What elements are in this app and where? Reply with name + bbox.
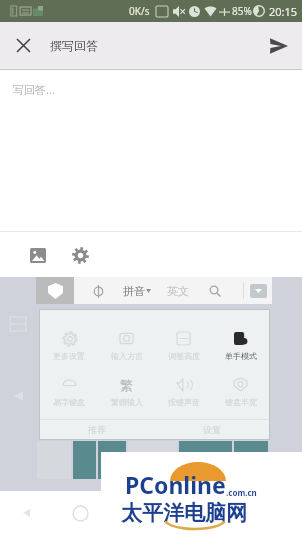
staticText: 写回答...: [13, 82, 55, 97]
button[interactable]: Send: [255, 22, 302, 69]
button[interactable]: Home: [66, 499, 94, 527]
button[interactable]: Key: [98, 441, 126, 479]
button[interactable]: 易字键盘: [40, 373, 98, 415]
staticText: 推荐: [88, 424, 106, 435]
staticText: 太平洋电脑网: [121, 500, 247, 526]
staticText: 20:15: [269, 4, 298, 19]
button[interactable]: 键盘半宽: [212, 373, 269, 415]
button[interactable]: Hide keyboard: [244, 277, 272, 304]
staticText: 键盘半宽: [225, 397, 257, 407]
staticText: 撰写回答: [50, 38, 98, 53]
staticText: 按键声音: [168, 397, 200, 407]
button[interactable]: 按键声音: [155, 373, 212, 415]
button[interactable]: Search: [205, 281, 225, 301]
button[interactable]: 英文: [167, 284, 189, 298]
staticText: 0K/s: [129, 4, 150, 18]
staticText: 易字键盘: [53, 397, 85, 407]
button[interactable]: Key: [128, 441, 177, 479]
staticText: 单手模式: [225, 351, 257, 361]
button[interactable]: 设置: [154, 420, 269, 439]
staticText: .com.cn: [226, 487, 257, 498]
staticText: 英文: [167, 284, 189, 298]
button[interactable]: 推荐: [40, 420, 154, 439]
button[interactable]: 繁: [98, 373, 155, 415]
button[interactable]: 输入方言: [98, 327, 155, 369]
staticText: 更多设置: [53, 351, 85, 361]
button[interactable]: 拼音: [123, 284, 151, 298]
button[interactable]: Voice input: [87, 280, 109, 302]
button[interactable]: Key: [234, 441, 268, 479]
button[interactable]: 更多设置: [40, 327, 98, 369]
staticText: 繁: [120, 377, 133, 393]
staticText: 拼音: [123, 284, 145, 298]
button[interactable]: Back: [12, 499, 40, 527]
staticText: PConline: [125, 469, 226, 500]
staticText: 调整高度: [168, 351, 200, 361]
button[interactable]: Key: [179, 441, 232, 479]
button[interactable]: Settings: [65, 240, 95, 270]
staticText: 繁體输入: [111, 397, 143, 407]
staticText: 设置: [203, 424, 221, 435]
button[interactable]: 单手模式: [212, 327, 269, 369]
button[interactable]: Input method logo: [36, 277, 74, 304]
button[interactable]: Insert image: [23, 240, 53, 270]
button[interactable]: Close: [0, 22, 47, 69]
staticText: 85%: [232, 4, 252, 18]
staticText: 输入方言: [111, 351, 143, 361]
button[interactable]: 调整高度: [155, 327, 212, 369]
